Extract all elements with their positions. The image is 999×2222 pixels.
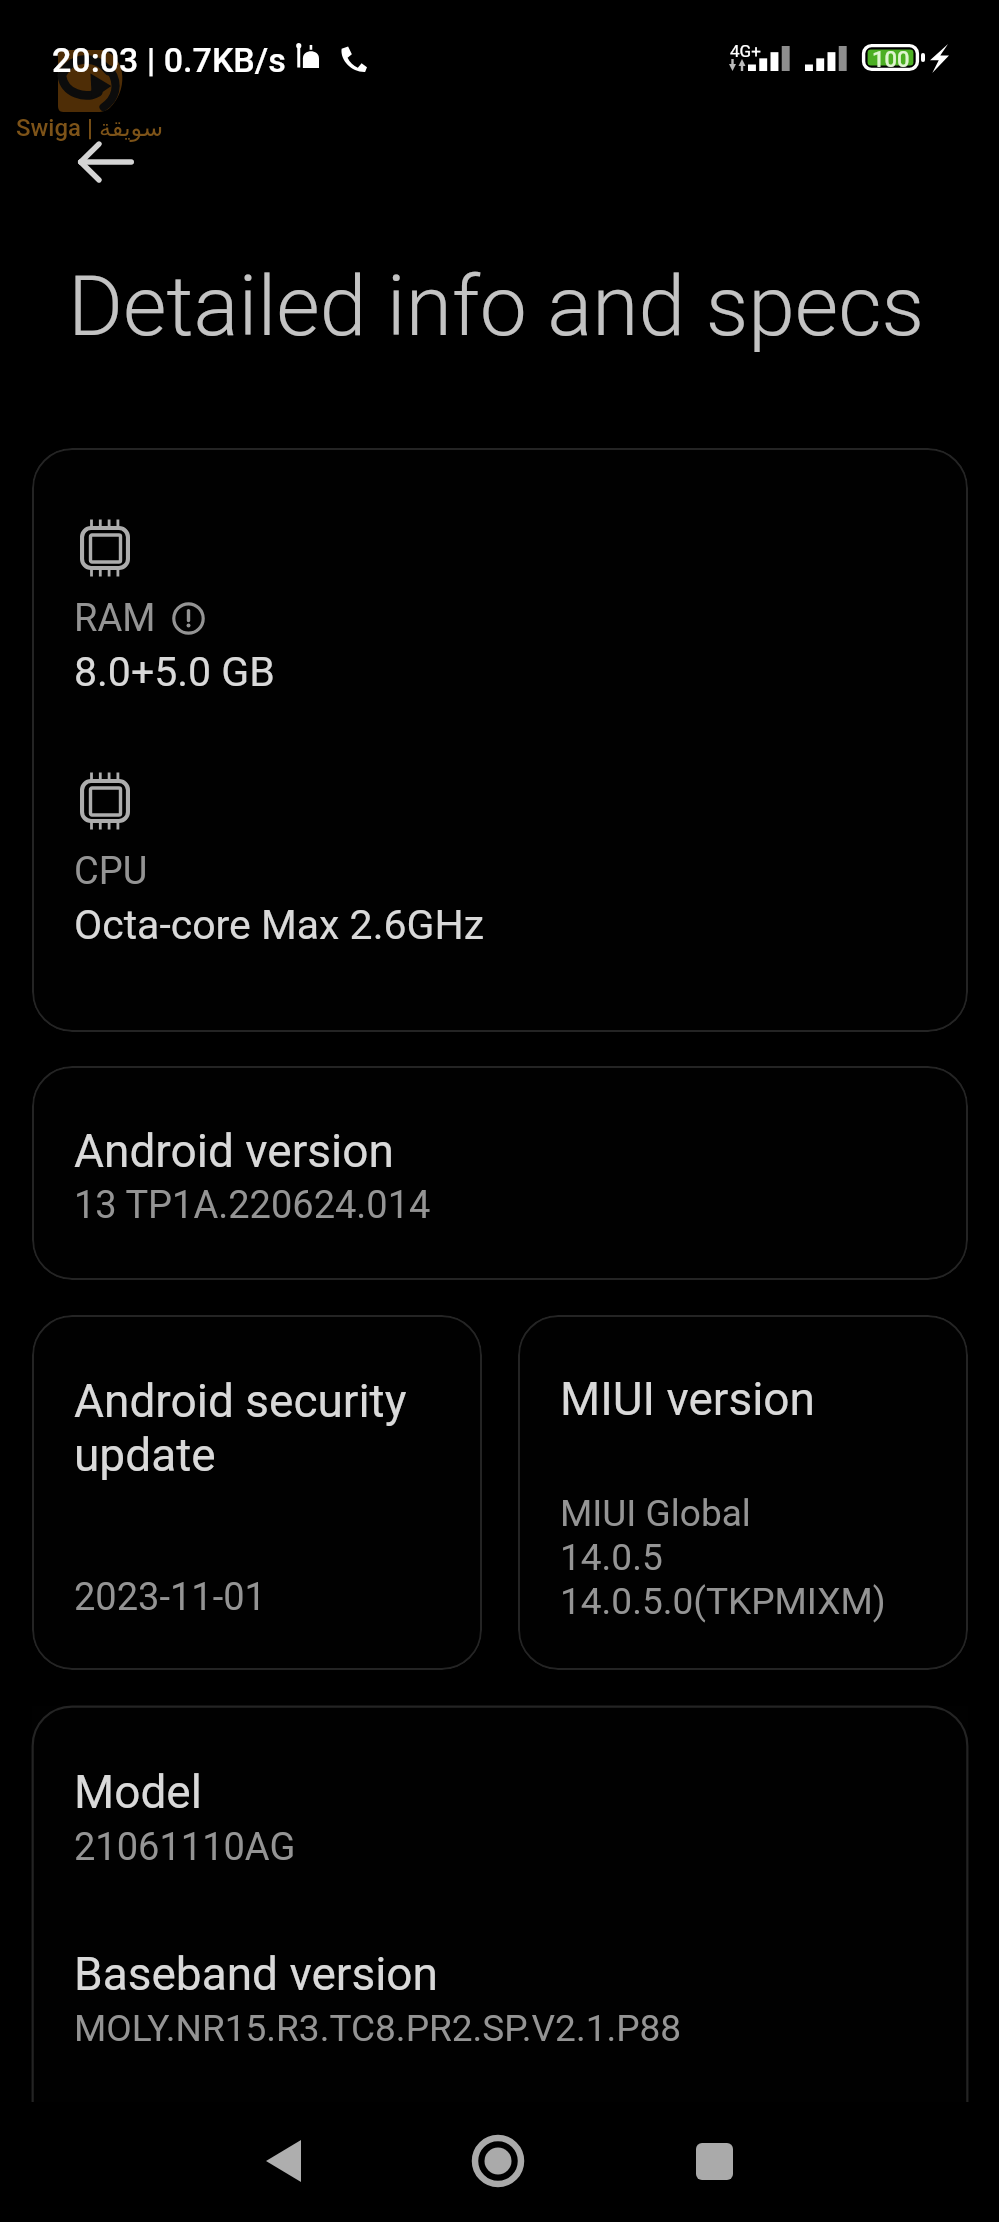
staticText: Octa-core Max 2.6GHz	[74, 901, 484, 949]
staticText: CPU	[74, 849, 148, 894]
button[interactable]: Back	[48, 104, 164, 220]
button[interactable]: Recents	[649, 2096, 779, 2222]
staticText: RAM	[74, 596, 156, 641]
staticText: Android version	[74, 1124, 394, 1178]
staticText: Model	[74, 1765, 202, 1819]
button[interactable]: Android security update	[32, 1315, 482, 1670]
staticText: 8.0+5.0 GB	[74, 648, 275, 696]
staticText: MOLY.NR15.R3.TC8.PR2.SP.V2.1.P88	[74, 2007, 682, 2050]
staticText: 100	[872, 47, 910, 73]
button[interactable]: Home	[433, 2096, 563, 2222]
staticText: MIUI Global 14.0.5 14.0.5.0(TKPMIXM)	[560, 1492, 886, 1623]
button[interactable]: RAM	[32, 448, 968, 1032]
button[interactable]: MIUI version	[518, 1315, 968, 1670]
button[interactable]: Android version	[32, 1066, 968, 1280]
staticText: MIUI version	[560, 1372, 815, 1426]
staticText: Swiga | سويقة	[16, 114, 164, 142]
staticText: 2023-11-01	[74, 1575, 266, 1620]
staticText: 21061110AG	[74, 1825, 296, 1870]
staticText: Baseband version	[74, 1947, 438, 2001]
staticText: 13 TP1A.220624.014	[74, 1183, 431, 1228]
staticText: Android security update	[74, 1374, 407, 1482]
staticText: Detailed info and specs	[68, 257, 925, 355]
staticText: 4G+	[730, 41, 761, 61]
button[interactable]: Model	[32, 1706, 968, 2102]
button[interactable]: Back	[218, 2096, 348, 2222]
staticText: 20:03 | 0.7KB/s	[52, 40, 286, 80]
